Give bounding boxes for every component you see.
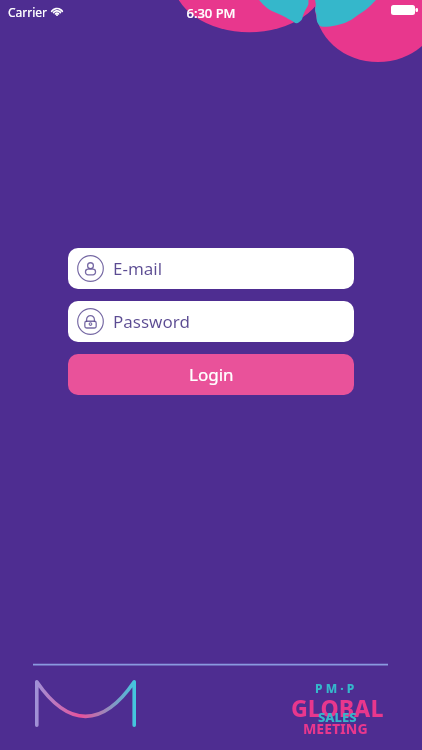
button[interactable]: E-mail	[68, 248, 354, 289]
other: Battery full	[391, 5, 419, 15]
button[interactable]: Login	[68, 354, 354, 395]
staticText: GLOBAL	[291, 692, 384, 723]
staticText: Carrier	[8, 4, 48, 20]
staticText: Password	[113, 310, 190, 333]
other: Wi-Fi signal	[51, 5, 63, 16]
staticText: MEETING	[303, 719, 368, 738]
staticText: E-mail	[113, 257, 163, 280]
staticText: 6:30 PM	[0, 4, 422, 22]
button[interactable]: Password	[68, 301, 354, 342]
staticText: Login	[189, 363, 234, 386]
staticText: SALES	[318, 708, 357, 726]
staticText: P M · P	[315, 680, 355, 696]
